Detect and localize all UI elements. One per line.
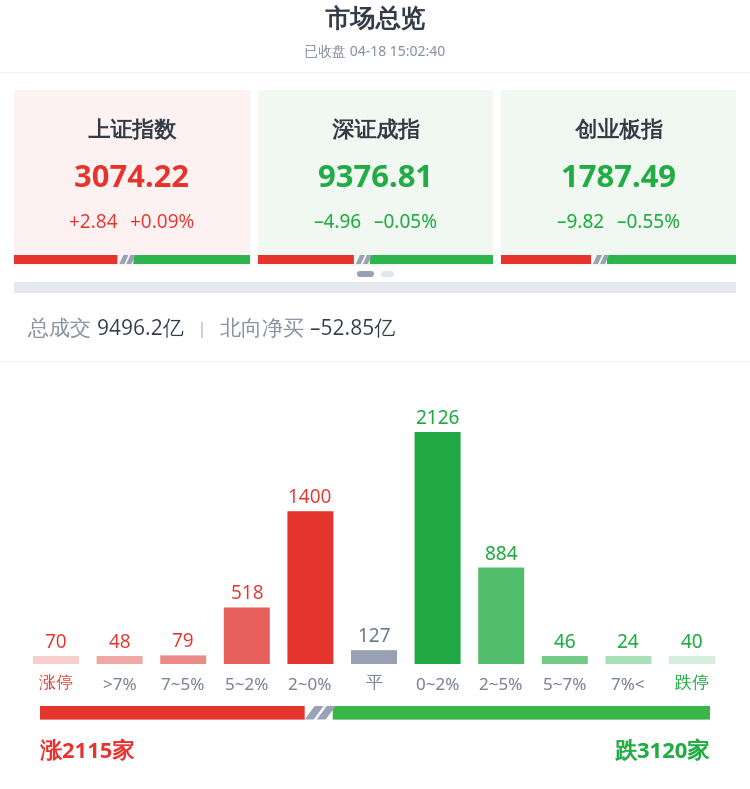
staticText: 跌停 [675,672,709,693]
staticText: 46 [554,628,576,654]
staticText: 平 [366,672,383,693]
staticText: +2.84 [69,208,118,234]
button[interactable]: 跌停 [661,672,723,693]
staticText: 上证指数 [88,116,176,144]
button[interactable]: 创业板指 [501,90,736,266]
button[interactable]: 深证成指 [258,90,493,266]
staticText: 40 [681,628,703,654]
staticText: 创业板指 [575,116,663,144]
staticText: 2~5% [479,672,523,695]
staticText: 北向净买 [220,313,310,342]
button[interactable]: 5~7% [534,672,596,695]
staticText: 7%< [611,672,645,695]
button[interactable]: 平 [343,672,405,693]
staticText: 1787.49 [561,154,677,196]
staticText: –4.96 [314,208,362,234]
staticText: 884 [485,540,518,566]
staticText: 127 [358,622,391,648]
staticText: 518 [231,579,264,605]
staticText: 7~5% [161,672,205,695]
staticText: 总成交 [28,313,97,342]
staticText: 市场总览 [325,3,425,34]
button[interactable]: >7% [89,672,151,695]
staticText: –52.85亿 [310,313,396,342]
staticText: 3074.22 [74,154,190,196]
staticText: >7% [103,672,137,695]
button[interactable]: 7~5% [152,672,214,695]
staticText: +0.09% [130,208,195,234]
staticText: 9376.81 [318,154,434,196]
button[interactable]: 总成交 [0,293,750,361]
staticText: 1400 [288,483,332,509]
staticText: 已收盘 04-18 15:02:40 [304,41,446,60]
button[interactable]: 0~2% [407,672,469,695]
staticText: 2~0% [288,672,332,695]
staticText: –0.05% [374,208,437,234]
staticText: 2126 [416,404,460,430]
staticText: 48 [109,628,131,654]
staticText: 深证成指 [332,116,420,144]
staticText: 24 [617,628,639,654]
staticText: 79 [172,627,194,653]
staticText: 5~2% [225,672,269,695]
staticText: 5~7% [543,672,587,695]
staticText: 70 [45,628,67,654]
staticText: | [184,316,220,339]
staticText: –0.55% [617,208,680,234]
button[interactable]: 2~0% [279,672,341,695]
button[interactable]: 上证指数 [14,90,250,266]
staticText: 涨停 [39,672,73,693]
button[interactable]: 2~5% [470,672,532,695]
staticText: 9496.2亿 [97,313,184,342]
staticText: –9.82 [557,208,605,234]
button[interactable]: 5~2% [216,672,278,695]
staticText: 跌3120家 [615,734,710,764]
button[interactable]: 涨停 [25,672,87,693]
staticText: 涨2115家 [40,734,135,764]
button[interactable]: 7%< [597,672,659,695]
staticText: 0~2% [416,672,460,695]
